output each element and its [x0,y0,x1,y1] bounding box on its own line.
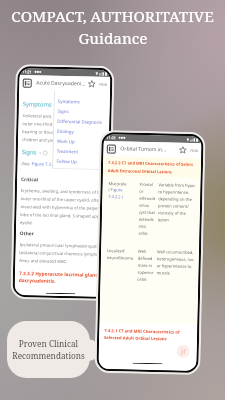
button[interactable]: Etiology [57,126,109,137]
staticText: Follow Up [56,158,77,164]
staticText: ( Figure 7.4.2.2 ) [108,187,123,199]
staticText: and [58,162,68,168]
button[interactable]: Favorite [88,81,95,88]
staticText: Unilateral pain, redness, and swelling o… [22,113,109,144]
staticText: Acute Dacryoadeni... [36,79,86,87]
staticText: Symptoms [58,98,80,104]
button[interactable]: FIND [190,148,198,153]
staticText: Well circumscribed, heterogeneous, iso- … [156,249,195,276]
staticText: 7.4.2.1 CT and MRI Characteristics of Se… [104,328,180,342]
button[interactable]: Treatment [57,146,109,157]
button[interactable]: FIND [99,82,107,87]
staticText: Localized neurofibroma [107,248,136,261]
staticText: (See [21,161,31,167]
staticText: Other [20,230,35,237]
staticText: 7.4.2.2 CT and MRI Characteristics of Se… [108,160,193,175]
staticText: Proven Clinical Recommendations [12,338,85,361]
staticText: Guidance [78,28,148,49]
button[interactable]: Differential Diagnosis [57,116,109,127]
button[interactable]: Book [23,79,31,87]
button[interactable]: Follow Up [56,156,109,167]
staticText: Figure 7.3.3.1 [31,161,58,168]
button[interactable]: Signs [57,106,110,117]
button[interactable]: Notes [177,345,190,358]
staticText: 11:21 [22,69,32,74]
staticText: Etiology [57,128,74,134]
staticText: 7.3.3.2 Hyperacute lacrimal gland dacryo… [19,270,99,286]
staticText: 11:21 [106,135,117,140]
staticText: Ipsilateral preauricular lymphadenopathy… [19,242,105,265]
staticText: 7.3.3.2 [68,162,81,168]
staticText: Differential Diagnosis [57,118,102,125]
staticText: jif [181,348,187,356]
staticText: Work Up [57,138,75,144]
staticText: Mucocele [108,181,127,186]
staticText: Well defined mass in superior orbit [137,249,155,282]
staticText: Variable from hypo- to hyperintense, dep… [158,182,197,223]
staticText: Signs - [22,148,42,157]
staticText: Signs [58,108,70,114]
staticText: Orbital Tumors in... [120,145,166,153]
staticText: COMPACT, AUTHORITATIVE [11,6,214,27]
staticText: FIND [99,82,107,87]
button[interactable]: Symptoms [58,96,110,107]
staticText: Erythema, swelling, and tenderness of th… [20,188,106,227]
staticText: FIND [190,148,198,153]
staticText: Frontal or ethmoid sinus cyst that exten… [138,182,157,236]
staticText: Symptoms - [23,100,57,109]
button[interactable]: Favorite [179,147,186,154]
button[interactable]: Proven Clinical Recommendations [7,321,90,378]
staticText: Treatment [57,148,79,154]
staticText: Critical [21,176,38,183]
button[interactable]: Book [107,145,115,153]
button[interactable]: Work Up [57,136,109,147]
